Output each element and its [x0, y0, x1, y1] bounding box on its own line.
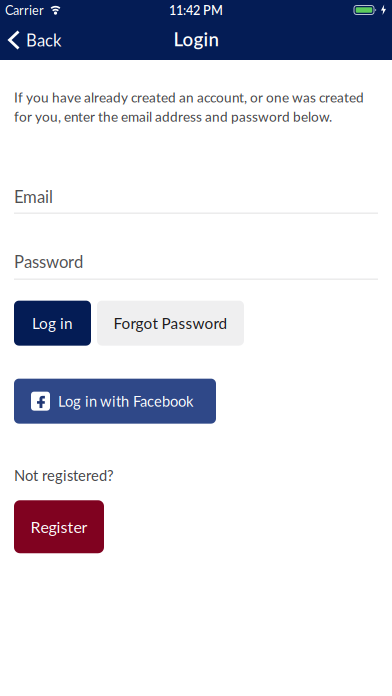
- button[interactable]: Register: [14, 500, 104, 553]
- staticText: Back: [26, 30, 61, 50]
- button[interactable]: Log in with Facebook: [14, 379, 216, 424]
- staticText: Email: [14, 187, 53, 207]
- staticText: Forgot Password: [113, 314, 227, 332]
- staticText: Log in with Facebook: [58, 392, 193, 410]
- button[interactable]: Log in: [14, 301, 91, 346]
- staticText: Not registered?: [14, 467, 114, 484]
- staticText: If you have already created an account, …: [14, 89, 364, 125]
- button[interactable]: Back: [0, 30, 61, 50]
- staticText: Register: [30, 517, 87, 536]
- staticText: 11:42 PM: [169, 2, 223, 18]
- staticText: Log in: [32, 314, 73, 332]
- button[interactable]: Forgot Password: [97, 301, 244, 346]
- staticText: Password: [14, 252, 83, 272]
- staticText: Carrier: [5, 2, 44, 18]
- staticText: Login: [173, 28, 218, 50]
